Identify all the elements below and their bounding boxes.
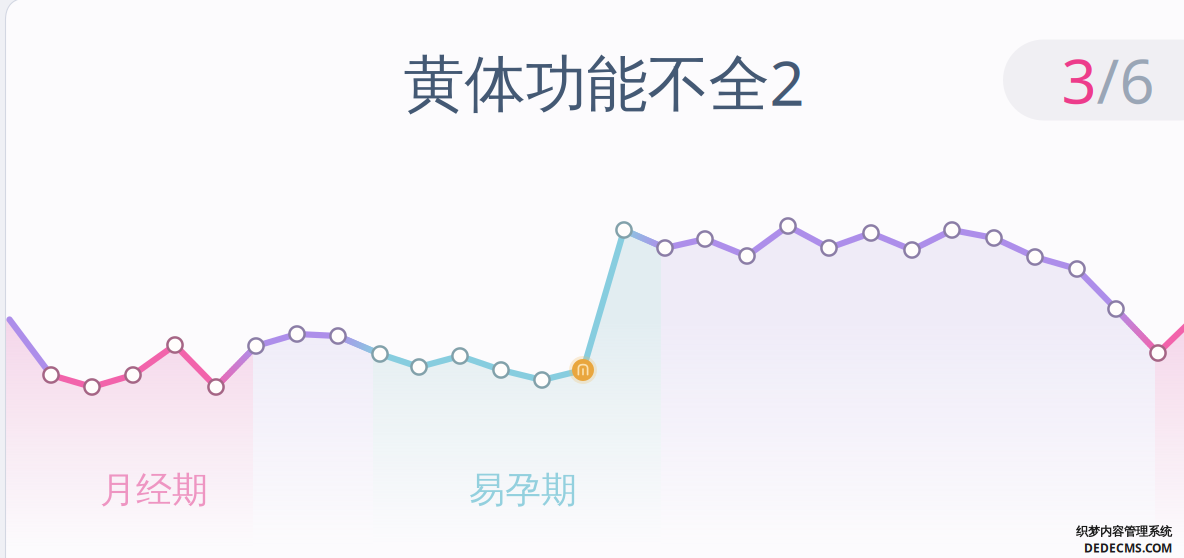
staticText: 织梦内容管理系统 (1076, 524, 1172, 539)
staticText: 黄体功能不全2 (403, 41, 804, 123)
staticText: 月经期 (100, 468, 208, 512)
staticText: 易孕期 (469, 468, 577, 512)
staticText: DEDECMS.COM (1084, 540, 1172, 556)
staticText: 3 (1061, 39, 1096, 121)
staticText: /6 (1096, 39, 1154, 121)
button[interactable]: 3 (1003, 39, 1184, 120)
